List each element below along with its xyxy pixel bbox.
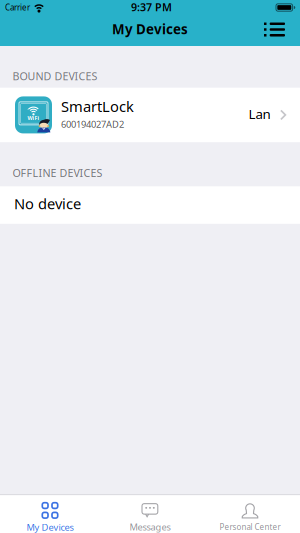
staticText: BOUND DEVICES [12,69,97,83]
staticText: Messages [129,521,170,533]
staticText: No device [14,194,81,213]
button[interactable]: Personal Center [200,495,300,533]
button[interactable]: Messages [100,495,200,533]
button[interactable]: My Devices [0,495,100,533]
staticText: SmartLock [61,96,134,116]
staticText: My Devices [112,20,188,38]
staticText: My Devices [26,521,73,533]
staticText: WiFi [27,114,39,121]
staticText: Lan [248,105,270,123]
button[interactable]: WiFi [0,88,300,142]
button[interactable]: Menu [264,22,300,36]
staticText: OFFLINE DEVICES [12,166,102,180]
staticText: 9:37 PM [131,0,172,14]
staticText: Personal Center [219,521,280,532]
staticText: Carrier [5,2,30,13]
staticText: 600194027AD2 [61,118,124,130]
